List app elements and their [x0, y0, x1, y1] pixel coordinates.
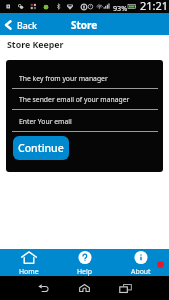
button[interactable]: The sender email of your manager [12, 93, 158, 110]
staticText: Enter Your email [19, 117, 72, 126]
staticText: Back [17, 20, 38, 32]
staticText: Store Keeper [7, 39, 64, 51]
staticText: The sender email of your manager [19, 95, 130, 104]
button[interactable]: Continue [13, 136, 69, 160]
button[interactable]: Back [32, 276, 55, 300]
button[interactable]: Help [57, 249, 113, 276]
staticText: Help [77, 267, 93, 276]
staticText: 93% [113, 3, 128, 13]
staticText: Store [71, 18, 98, 32]
button[interactable]: Recents [114, 276, 137, 300]
staticText: The key from your manager [19, 74, 108, 83]
button[interactable]: Home [73, 276, 96, 300]
button[interactable]: Enter Your email [12, 115, 158, 132]
button[interactable]: The key from your manager [12, 72, 158, 89]
button[interactable]: About [113, 249, 169, 276]
staticText: About [131, 267, 151, 276]
staticText: Continue [18, 141, 64, 155]
staticText: Home [19, 267, 39, 276]
button[interactable]: Back [0, 13, 42, 35]
button[interactable]: Home [0, 249, 57, 276]
staticText: 21:21 [140, 0, 169, 11]
